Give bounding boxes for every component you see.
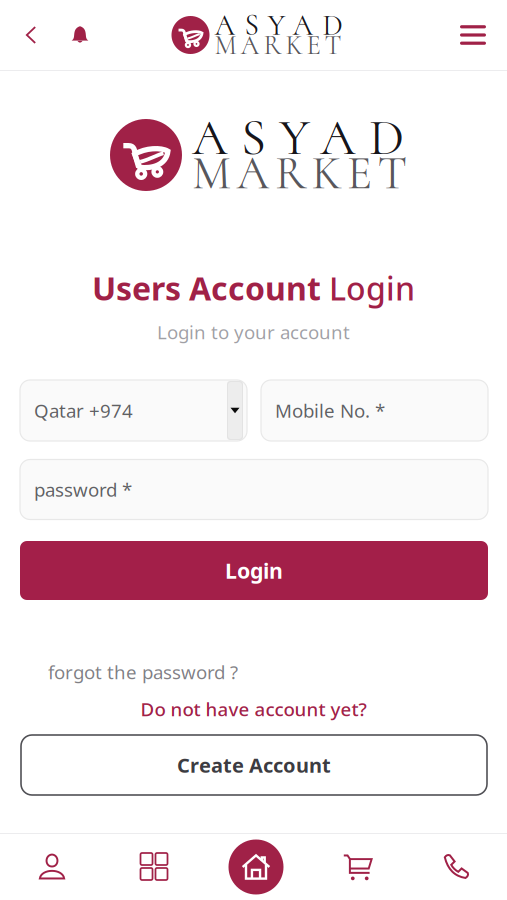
button[interactable]: Login: [20, 541, 488, 600]
staticText: forgot the password ?: [48, 660, 238, 684]
button[interactable]: Back: [9, 13, 53, 57]
staticText: ASYAD: [192, 107, 404, 169]
button[interactable]: Create Account: [21, 735, 487, 795]
staticText: Do not have account yet?: [140, 697, 366, 721]
staticText: Create Account: [177, 752, 331, 778]
staticText: Login to your account: [157, 320, 350, 344]
staticText: password *: [34, 477, 132, 502]
staticText: Users Account: [92, 267, 329, 309]
staticText: MARKET: [214, 29, 341, 62]
button[interactable]: Menu: [451, 13, 495, 57]
button[interactable]: Notifications: [58, 13, 102, 57]
staticText: Mobile No. *: [275, 398, 385, 423]
staticText: Login: [225, 556, 283, 585]
button[interactable]: Account: [10, 833, 94, 900]
button[interactable]: Cart: [316, 833, 400, 900]
staticText: MARKET: [192, 145, 407, 202]
staticText: Login: [329, 267, 415, 309]
button[interactable]: forgot the password ?: [48, 657, 298, 687]
button[interactable]: Do not have account yet?: [140, 695, 366, 723]
button[interactable]: Home: [214, 833, 298, 900]
staticText: ASYAD: [214, 7, 342, 43]
staticText: Qatar +974: [34, 398, 133, 423]
button[interactable]: Categories: [112, 833, 196, 900]
button[interactable]: Contact: [414, 833, 498, 900]
